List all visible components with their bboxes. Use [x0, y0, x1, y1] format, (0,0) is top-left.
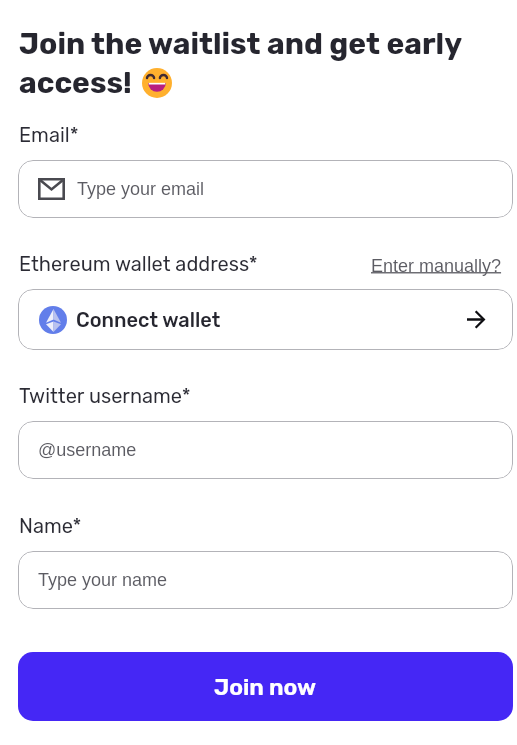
button[interactable]: Type your name	[18, 551, 513, 609]
staticText: Join the waitlist and get early	[19, 26, 463, 62]
staticText: Type your email	[77, 179, 205, 199]
staticText: access!	[19, 65, 132, 101]
staticText: Name*	[19, 514, 82, 538]
button[interactable]: Type your email	[18, 160, 513, 218]
staticText: Twitter username*	[19, 384, 191, 408]
staticText: @username	[38, 440, 137, 460]
button[interactable]: Join now	[18, 652, 513, 721]
button[interactable]: Enter manually?	[371, 256, 502, 276]
staticText: Ethereum wallet address*	[19, 252, 258, 276]
staticText: Connect wallet	[76, 308, 221, 332]
button[interactable]: @username	[18, 421, 513, 479]
other: Connect wallet	[467, 311, 485, 328]
staticText: Join now	[214, 673, 317, 700]
button[interactable]: Connect wallet	[18, 289, 513, 350]
staticText: Email*	[19, 123, 79, 147]
staticText: Type your name	[38, 570, 168, 590]
